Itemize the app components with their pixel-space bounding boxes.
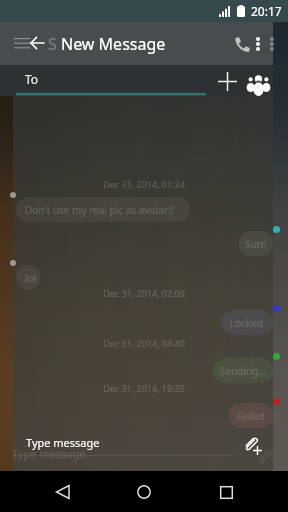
staticText: Sure bbox=[245, 237, 267, 251]
staticText: Dec 31, 2014, 01:24 bbox=[0, 178, 288, 190]
button[interactable]: Failed bbox=[229, 403, 273, 428]
button[interactable]: Recent apps bbox=[206, 472, 246, 512]
button[interactable]: Add recipient bbox=[213, 67, 241, 95]
button[interactable]: Call bbox=[228, 30, 256, 58]
button[interactable]: Back bbox=[22, 28, 52, 58]
staticText: Failed bbox=[237, 409, 265, 423]
button[interactable]: Locked bbox=[221, 310, 273, 335]
staticText: Type message bbox=[12, 446, 86, 461]
button[interactable]: More options bbox=[246, 32, 270, 56]
button[interactable]: Don't use my real pic as avatar!! bbox=[16, 197, 190, 222]
staticText: Sending... bbox=[220, 364, 267, 378]
staticText: Dec 31, 2014, 19:35 bbox=[0, 382, 288, 394]
button[interactable]: Sending... bbox=[213, 358, 273, 383]
staticText: 20:17 bbox=[251, 3, 282, 19]
button[interactable]: Back bbox=[42, 472, 82, 512]
staticText: Dec 31, 2014, 02:09 bbox=[0, 287, 288, 299]
button[interactable]: Sure bbox=[239, 231, 273, 256]
staticText: S bbox=[48, 33, 57, 55]
staticText: New Message bbox=[61, 33, 166, 55]
staticText: Dec 31, 2014, 04:40 bbox=[0, 337, 288, 349]
staticText: Locked bbox=[230, 316, 264, 330]
staticText: Type message bbox=[26, 435, 100, 450]
staticText: Don't use my real pic as avatar!! bbox=[25, 203, 174, 217]
staticText: lol bbox=[25, 271, 37, 285]
button[interactable]: lol bbox=[16, 265, 41, 290]
button[interactable]: Home bbox=[124, 472, 164, 512]
staticText: To bbox=[25, 71, 39, 87]
button[interactable]: Attach file bbox=[238, 431, 264, 457]
button[interactable]: Choose contacts bbox=[244, 67, 272, 95]
